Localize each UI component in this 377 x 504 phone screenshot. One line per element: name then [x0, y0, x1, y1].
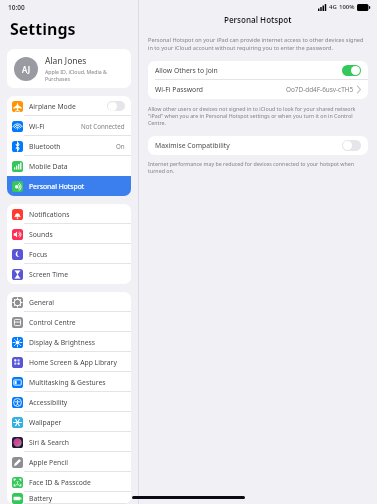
button[interactable]: Wallpaper [7, 412, 131, 432]
staticText: Siri & Search [29, 438, 70, 447]
button[interactable]: Notifications [7, 204, 131, 224]
staticText: Display & Brightness [29, 338, 96, 347]
button[interactable]: Sounds [7, 224, 131, 244]
button[interactable]: Multitasking & Gestures [7, 372, 131, 392]
staticText: Personal Hotspot [29, 182, 85, 191]
staticText: Personal Hotspot on your iPad can provid… [148, 36, 368, 52]
staticText: 10:00 [8, 3, 25, 12]
button[interactable]: Battery [7, 492, 131, 504]
staticText: Not Connected [81, 122, 125, 130]
button[interactable]: Allow Others to Join [148, 61, 368, 80]
button[interactable]: Mobile Data [7, 156, 131, 176]
button[interactable]: Wi-Fi Password [148, 80, 368, 99]
staticText: Airplane Mode [29, 102, 76, 111]
staticText: Internet performance may be reduced for … [148, 160, 368, 174]
button[interactable]: Siri & Search [7, 432, 131, 452]
staticText: Home Screen & App Library [29, 358, 117, 367]
staticText: Battery [29, 494, 53, 503]
button[interactable]: Maximise Compatibility [148, 136, 368, 155]
staticText: Maximise Compatibility [155, 141, 230, 150]
staticText: On [116, 142, 125, 150]
staticText: Multitasking & Gestures [29, 378, 106, 387]
button[interactable]: Control Centre [7, 312, 131, 332]
button[interactable]: Wi-Fi [7, 116, 131, 136]
button[interactable]: Airplane Mode toggle [107, 101, 125, 111]
staticText: Face ID & Passcode [29, 478, 91, 487]
button[interactable]: AJ [7, 49, 131, 88]
button[interactable]: Focus [7, 244, 131, 264]
staticText: Focus [29, 250, 48, 259]
staticText: Personal Hotspot [224, 14, 292, 25]
button[interactable]: Personal Hotspot [7, 176, 131, 196]
staticText: Apple Pencil [29, 458, 68, 467]
staticText: Alan Jones [45, 55, 87, 67]
staticText: Wi-Fi Password [155, 85, 204, 94]
button[interactable]: Face ID & Passcode [7, 472, 131, 492]
staticText: Screen Time [29, 270, 69, 279]
staticText: 100% [339, 3, 355, 11]
button[interactable]: Screen Time [7, 264, 131, 284]
staticText: Sounds [29, 230, 53, 239]
staticText: Bluetooth [29, 142, 61, 151]
button[interactable]: General [7, 292, 131, 312]
staticText: Wi-Fi [29, 122, 45, 131]
button[interactable]: Allow Others to Join toggle [342, 65, 361, 76]
staticText: Oo7D-dd4F-6usv-cTH5 [286, 85, 354, 94]
staticText: Apple ID, iCloud, Media & Purchases [45, 68, 124, 82]
staticText: Notifications [29, 210, 70, 219]
staticText: Allow Others to Join [155, 66, 218, 75]
button[interactable]: Maximise Compatibility toggle [342, 140, 361, 151]
button[interactable]: Display & Brightness [7, 332, 131, 352]
staticText: General [29, 298, 55, 307]
button[interactable]: Bluetooth [7, 136, 131, 156]
staticText: Settings [10, 18, 76, 40]
staticText: Mobile Data [29, 162, 68, 171]
staticText: Wallpaper [29, 418, 62, 427]
staticText: Control Centre [29, 318, 76, 327]
button[interactable]: Apple Pencil [7, 452, 131, 472]
staticText: Allow other users or devices not signed … [148, 105, 368, 126]
button[interactable]: Accessibility [7, 392, 131, 412]
button[interactable]: Home Screen & App Library [7, 352, 131, 372]
button[interactable]: Airplane Mode [7, 96, 131, 116]
staticText: AJ [22, 64, 30, 75]
staticText: 4G [329, 3, 337, 11]
staticText: Accessibility [29, 398, 68, 407]
